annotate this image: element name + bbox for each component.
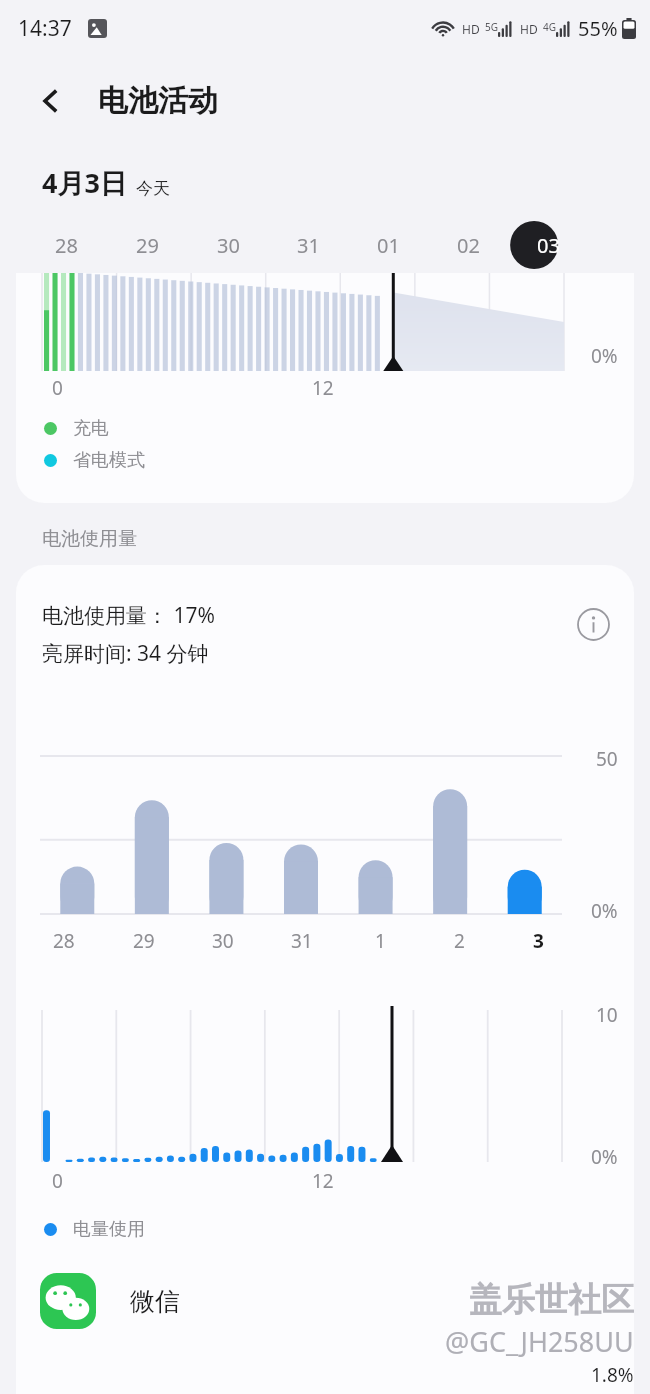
staticText: 0% <box>591 898 618 924</box>
staticText: 12 <box>312 375 334 401</box>
staticText: @GC_JH258UU <box>445 1323 634 1360</box>
staticText: 电池活动 <box>98 82 218 120</box>
staticText: 盖乐世社区 <box>469 1279 634 1321</box>
staticText: 30 <box>212 928 234 954</box>
staticText: 充电 <box>73 417 109 440</box>
staticText: 亮屏时间: 34 分钟 <box>42 639 209 668</box>
staticText: 0 <box>52 375 63 401</box>
staticText: 省电模式 <box>73 449 145 472</box>
staticText: 2 <box>454 928 465 954</box>
staticText: 28 <box>55 232 78 259</box>
staticText: 微信 <box>130 1286 180 1317</box>
staticText: 4月3日 <box>42 164 127 201</box>
button[interactable]: Info <box>570 601 616 647</box>
staticText: 29 <box>136 232 159 259</box>
staticText: 1 <box>375 928 386 954</box>
staticText: 5G <box>485 20 498 34</box>
staticText: 1.8% <box>591 1362 634 1388</box>
staticText: 29 <box>133 928 155 954</box>
staticText: 12 <box>312 1168 334 1194</box>
staticText: 55% <box>578 15 618 42</box>
button[interactable]: Back <box>26 76 76 126</box>
staticText: 0 <box>52 1168 63 1194</box>
button[interactable]: 微信 <box>16 1273 634 1329</box>
staticText: 0% <box>591 1144 618 1170</box>
staticText: 今天 <box>136 178 170 199</box>
staticText: 31 <box>297 232 320 259</box>
staticText: 电池使用量： 17% <box>42 601 215 630</box>
staticText: 50 <box>596 746 618 772</box>
staticText: 30 <box>217 232 240 259</box>
staticText: 电量使用 <box>73 1218 145 1241</box>
button[interactable]: 0% <box>16 273 634 503</box>
staticText: 10 <box>596 1002 618 1028</box>
staticText: 02 <box>457 232 480 259</box>
staticText: 28 <box>53 928 75 954</box>
staticText: 电池使用量 <box>42 527 137 551</box>
staticText: 31 <box>291 928 313 954</box>
staticText: 0% <box>591 343 618 369</box>
staticText: 01 <box>377 232 400 259</box>
staticText: HD <box>462 21 480 37</box>
staticText: 03 <box>537 232 560 259</box>
staticText: 14:37 <box>18 14 72 43</box>
staticText: 3 <box>533 928 544 954</box>
staticText: 4G <box>543 20 556 34</box>
staticText: HD <box>520 21 538 37</box>
button[interactable]: 电池使用量： 17% <box>16 565 634 1394</box>
